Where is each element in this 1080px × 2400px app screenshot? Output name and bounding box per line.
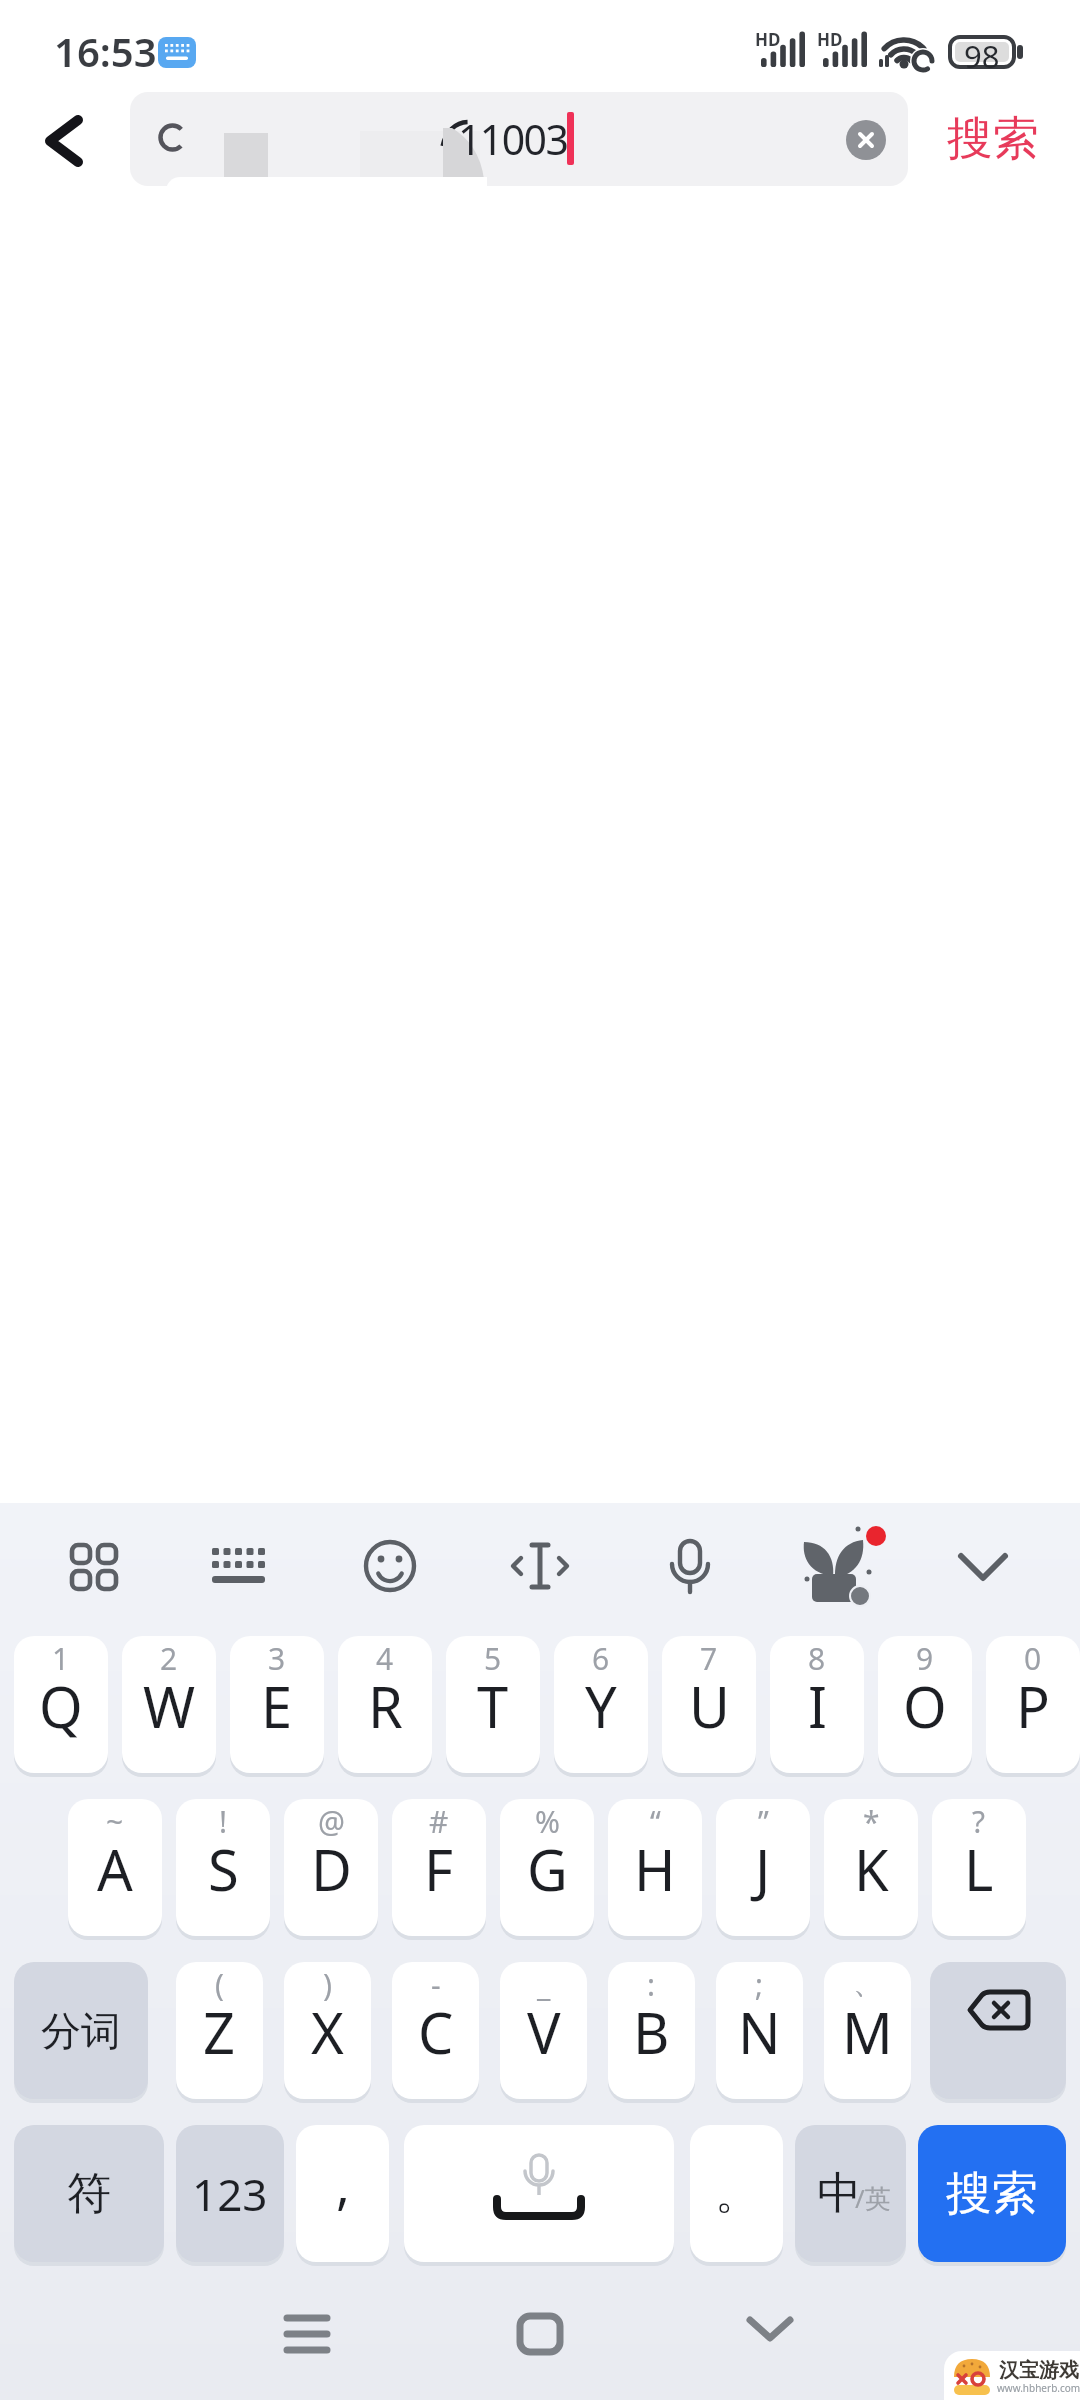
staticText: D xyxy=(311,1831,352,1907)
button[interactable] xyxy=(277,2304,337,2364)
staticText: 、 xyxy=(853,1964,883,2002)
button[interactable]: 2 xyxy=(122,1636,216,1773)
staticText: O xyxy=(903,1668,947,1744)
staticText: V xyxy=(527,1994,561,2070)
button[interactable]: 3 xyxy=(230,1636,324,1773)
staticText: X xyxy=(311,1994,344,2070)
button[interactable] xyxy=(510,1540,570,1592)
button[interactable]: 1 xyxy=(14,1636,108,1773)
button[interactable]: ( xyxy=(176,1962,263,2099)
button[interactable] xyxy=(662,1536,718,1598)
button[interactable]: 0 xyxy=(986,1636,1080,1773)
staticText: 98 xyxy=(964,35,1000,71)
staticText: 3 xyxy=(268,1638,286,1679)
staticText: ( xyxy=(215,1964,224,2005)
button[interactable]: 、 xyxy=(824,1962,911,2099)
staticText: K xyxy=(854,1831,889,1907)
button[interactable]: 7 xyxy=(662,1636,756,1773)
staticText: : xyxy=(647,1964,656,2005)
button[interactable] xyxy=(510,2304,570,2364)
staticText: www.hbherb.com xyxy=(997,2381,1080,2395)
button[interactable]: ” xyxy=(716,1799,810,1936)
button[interactable]: _ xyxy=(500,1962,587,2099)
button[interactable]: 搜索 xyxy=(918,2125,1066,2262)
button[interactable]: % xyxy=(500,1799,594,1936)
button[interactable]: 5 xyxy=(446,1636,540,1773)
staticText: ? xyxy=(972,1801,986,1842)
staticText: L xyxy=(964,1831,994,1907)
staticText: * xyxy=(863,1801,880,1842)
staticText: 1 xyxy=(52,1638,70,1679)
button[interactable]: 4 xyxy=(338,1636,432,1773)
button[interactable]: 9 xyxy=(878,1636,972,1773)
staticText: Q xyxy=(39,1668,83,1744)
staticText: - xyxy=(431,1964,441,2005)
button[interactable]: ~ xyxy=(68,1799,162,1936)
staticText: /英 xyxy=(855,2180,891,2216)
button[interactable] xyxy=(404,2125,674,2262)
staticText: G xyxy=(527,1831,568,1907)
staticText: Z xyxy=(203,1994,236,2070)
staticText: T xyxy=(477,1668,509,1744)
button[interactable]: * xyxy=(824,1799,918,1936)
staticText: ) xyxy=(323,1964,332,2005)
staticText: B xyxy=(633,1994,670,2070)
button[interactable]: 6 xyxy=(554,1636,648,1773)
staticText: C xyxy=(418,1994,454,2070)
button[interactable] xyxy=(800,1524,890,1608)
button[interactable] xyxy=(34,108,98,174)
staticText: HD xyxy=(817,28,843,51)
button[interactable]: @ xyxy=(284,1799,378,1936)
staticText: F xyxy=(424,1831,454,1907)
button[interactable] xyxy=(950,1540,1016,1592)
staticText: J xyxy=(755,1831,771,1907)
button[interactable]: 符 xyxy=(14,2125,164,2262)
staticText: HD xyxy=(755,28,781,51)
button[interactable]: 8 xyxy=(770,1636,864,1773)
button[interactable]: , xyxy=(296,2125,389,2262)
button[interactable] xyxy=(930,1962,1066,2099)
button[interactable] xyxy=(64,1536,124,1596)
staticText: 搜索 xyxy=(947,110,1039,168)
staticText: 符 xyxy=(67,2166,111,2221)
button[interactable]: 中 xyxy=(795,2125,906,2262)
staticText: 123 xyxy=(192,2164,268,2224)
staticText: 9 xyxy=(916,1638,934,1679)
staticText: ” xyxy=(758,1801,769,1842)
button[interactable]: ; xyxy=(716,1962,803,2099)
button[interactable]: ) xyxy=(284,1962,371,2099)
staticText: 16:53 xyxy=(54,24,157,78)
staticText: M xyxy=(842,1994,893,2070)
button[interactable]: # xyxy=(392,1799,486,1936)
staticText: @ xyxy=(318,1801,345,1842)
staticText: W xyxy=(143,1668,196,1744)
staticText: S xyxy=(208,1831,239,1907)
button[interactable]: : xyxy=(608,1962,695,2099)
staticText: 6 xyxy=(592,1638,610,1679)
button[interactable] xyxy=(740,2304,800,2364)
staticText: 搜索 xyxy=(946,2165,1038,2223)
staticText: 中 xyxy=(817,2166,861,2221)
staticText: , xyxy=(336,2148,350,2219)
staticText: ~ xyxy=(106,1801,124,1842)
button[interactable]: 123 xyxy=(176,2125,284,2262)
button[interactable]: “ xyxy=(608,1799,702,1936)
button[interactable]: 搜索 xyxy=(938,104,1048,174)
staticText: 分词 xyxy=(41,2006,121,2056)
button[interactable]: 。 xyxy=(690,2125,783,2262)
staticText: A xyxy=(97,1831,133,1907)
button[interactable]: ? xyxy=(932,1799,1026,1936)
staticText: 5 xyxy=(484,1638,502,1679)
button[interactable]: ! xyxy=(176,1799,270,1936)
staticText: # xyxy=(429,1801,449,1842)
staticText: 11003 xyxy=(458,111,568,167)
button[interactable] xyxy=(130,92,908,186)
staticText: E xyxy=(261,1668,293,1744)
button[interactable] xyxy=(208,1536,268,1596)
staticText: “ xyxy=(650,1801,661,1842)
button[interactable] xyxy=(362,1538,418,1594)
button[interactable]: - xyxy=(392,1962,479,2099)
button[interactable] xyxy=(846,120,886,160)
button[interactable]: 分词 xyxy=(14,1962,148,2099)
staticText: P xyxy=(1016,1668,1050,1744)
